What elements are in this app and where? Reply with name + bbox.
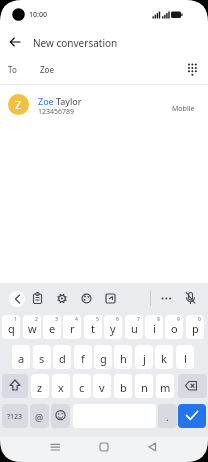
button[interactable]: o (165, 315, 183, 339)
staticText: v (99, 380, 105, 395)
staticText: j (143, 351, 146, 366)
button[interactable]: b (114, 374, 132, 398)
button[interactable]: z (31, 374, 49, 398)
staticText: Zoe (40, 64, 54, 75)
staticText: m (160, 380, 171, 395)
button[interactable]: ?123 (2, 404, 28, 428)
button[interactable]: c (73, 374, 91, 398)
staticText: 7 (137, 316, 140, 323)
staticText: p (192, 321, 199, 336)
button[interactable]: r (63, 315, 81, 339)
staticText: n (141, 380, 148, 395)
staticText: f (81, 351, 85, 366)
button[interactable]: d (53, 345, 71, 369)
staticText: g (100, 351, 107, 366)
staticText: ?123 (7, 412, 23, 422)
button[interactable]: e (43, 315, 61, 339)
staticText: 5 (96, 316, 99, 323)
staticText: 9 (177, 316, 180, 323)
button[interactable]: a (12, 345, 30, 369)
button[interactable] (0, 88, 208, 122)
button[interactable] (51, 404, 70, 428)
staticText: e (49, 321, 56, 336)
staticText: 2 (35, 316, 38, 323)
staticText: 123456789 (38, 107, 75, 117)
staticText: New conversation (33, 36, 118, 50)
staticText: @ (35, 411, 44, 423)
staticText: d (59, 351, 66, 366)
staticText: a (18, 351, 25, 366)
staticText: b (120, 380, 127, 395)
staticText: 0 (198, 316, 201, 323)
button[interactable]: t (84, 315, 102, 339)
staticText: r (70, 321, 75, 336)
staticText: w (28, 321, 37, 336)
staticText: 8 (157, 316, 160, 323)
button[interactable]: f (74, 345, 92, 369)
staticText: q (8, 321, 15, 336)
staticText: l (184, 351, 187, 366)
staticText: x (58, 380, 64, 395)
staticText: . (166, 410, 169, 424)
button[interactable]: u (125, 315, 143, 339)
button[interactable] (40, 438, 70, 460)
button[interactable]: g (94, 345, 112, 369)
button[interactable]: @ (30, 404, 49, 428)
button[interactable] (9, 291, 25, 307)
staticText: Mobile (172, 104, 195, 114)
staticText: c (79, 380, 85, 395)
button[interactable] (89, 438, 119, 460)
button[interactable] (178, 404, 206, 428)
staticText: 6 (116, 316, 119, 323)
staticText: 1 (14, 316, 17, 323)
staticText: 3 (55, 316, 58, 323)
button[interactable]: . (158, 404, 177, 428)
staticText: k (161, 351, 167, 366)
button[interactable] (0, 56, 208, 84)
staticText: 4 (75, 316, 78, 323)
staticText: s (39, 351, 45, 366)
staticText: Z (15, 97, 22, 112)
staticText: u (131, 321, 138, 336)
button[interactable] (137, 438, 167, 460)
staticText: To (8, 64, 17, 75)
button[interactable]: l (176, 345, 194, 369)
staticText: t (91, 321, 95, 336)
button[interactable]: q (2, 315, 20, 339)
button[interactable]: i (145, 315, 163, 339)
button[interactable] (4, 32, 26, 52)
button[interactable] (178, 374, 207, 398)
button[interactable]: p (186, 315, 204, 339)
staticText: i (153, 321, 156, 336)
button[interactable]: j (135, 345, 153, 369)
button[interactable]: x (52, 374, 70, 398)
button[interactable]: y (104, 315, 122, 339)
button[interactable]: k (155, 345, 173, 369)
staticText: h (120, 351, 127, 366)
button[interactable]: m (156, 374, 174, 398)
button[interactable]: n (135, 374, 153, 398)
button[interactable]: w (23, 315, 41, 339)
staticText: Zoe Taylor (38, 95, 82, 107)
button[interactable]: h (114, 345, 132, 369)
button[interactable] (2, 374, 28, 398)
staticText: 10:00 (29, 10, 47, 20)
button[interactable]: s (33, 345, 51, 369)
staticText: o (171, 321, 178, 336)
button[interactable]: v (93, 374, 111, 398)
staticText: y (110, 321, 116, 336)
staticText: z (37, 380, 43, 395)
